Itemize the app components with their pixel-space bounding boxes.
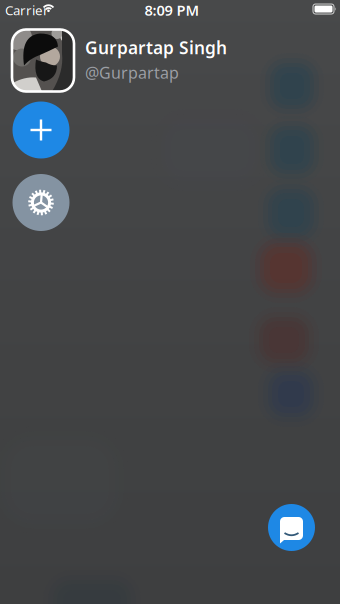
staticText: @Gurpartap — [85, 62, 179, 83]
staticText: Gurpartap Singh — [85, 36, 227, 59]
button[interactable]: Settings — [12, 174, 69, 231]
button[interactable]: Support chat — [268, 504, 315, 551]
button[interactable]: Add account — [12, 101, 69, 158]
staticText: 8:09 PM — [144, 0, 199, 20]
staticText: Carrier — [5, 1, 49, 19]
button[interactable]: Gurpartap Singh — [12, 29, 276, 93]
